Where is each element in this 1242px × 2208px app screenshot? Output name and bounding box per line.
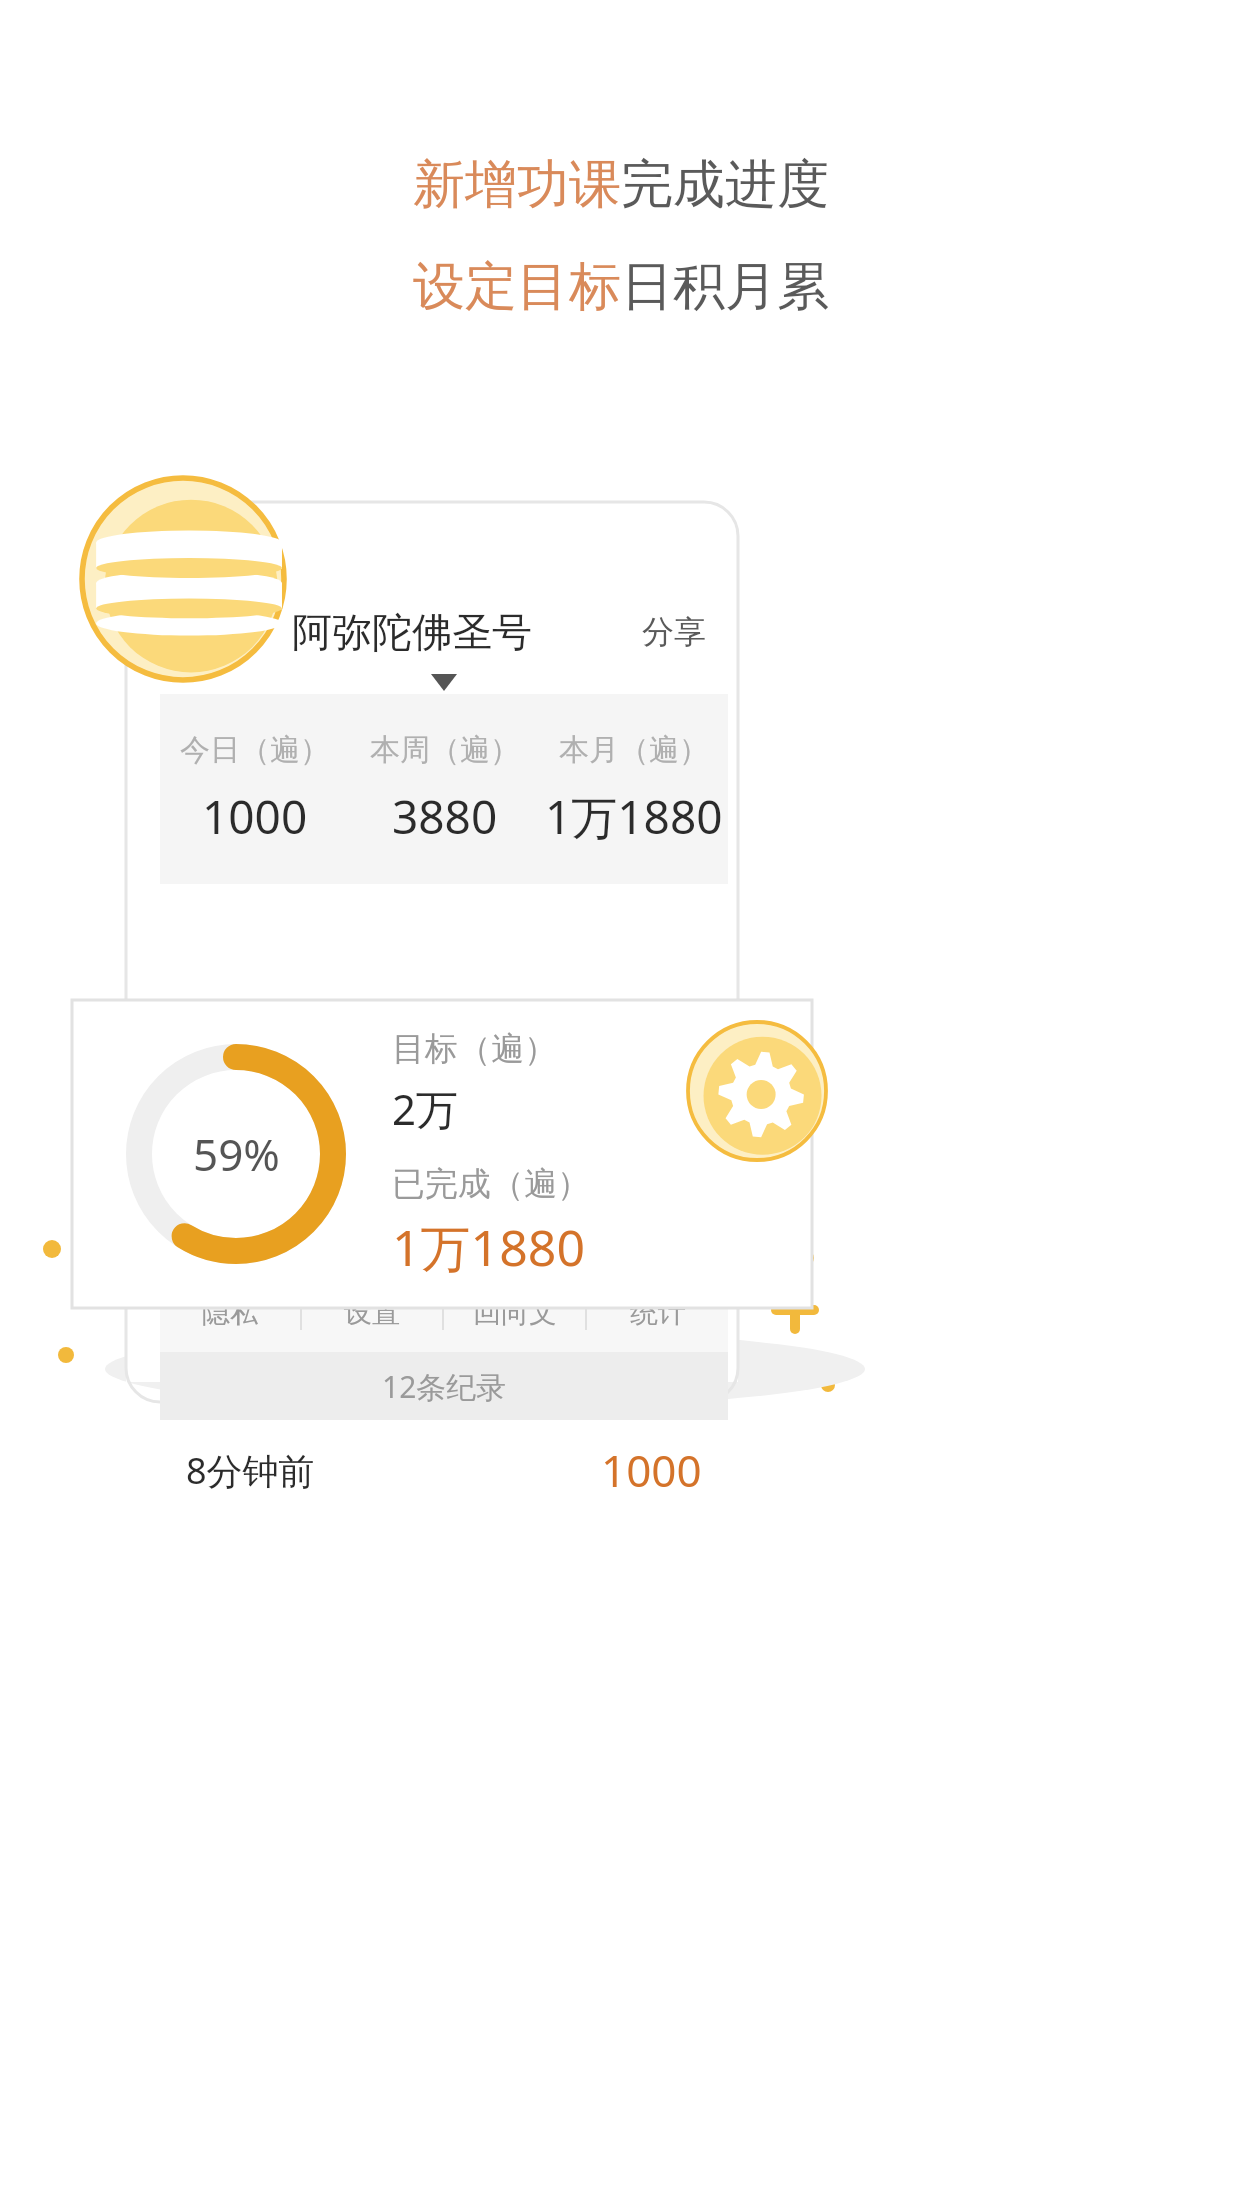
staticText: 设定目标日积月累 [413,254,829,320]
staticText: 1000 [202,785,308,848]
staticText: 59% [193,1124,280,1184]
staticText: 2万 [392,1080,459,1137]
staticText: 8分钟前 [186,1446,315,1495]
staticText: 今日（遍） [180,731,330,769]
staticText: 设置 [344,1295,400,1330]
staticText: 1000 [601,1440,702,1500]
staticText: 本周（遍） [370,731,520,769]
staticText: 1万1880 [545,785,723,848]
button[interactable]: 设置 [302,1204,442,1352]
staticText: 已完成（遍） [392,1163,590,1205]
button[interactable]: 今日（遍） [160,694,350,884]
staticText: 阿弥陀佛圣号 [292,607,532,657]
button[interactable]: 回向文 [444,1204,585,1352]
button[interactable]: Stack [82,478,284,680]
staticText: 本月（遍） [559,731,709,769]
staticText: 目标（遍） [392,1028,557,1070]
staticText: 1万1880 [392,1213,585,1281]
button[interactable]: 隐私 [160,1204,300,1352]
staticText: 3880 [392,785,498,848]
button[interactable]: Settings [688,1022,826,1160]
staticText: 回向文 [473,1295,557,1330]
button[interactable]: 本周（遍） [350,694,539,884]
staticText: 12条纪录 [382,1366,507,1407]
button[interactable]: 分享 [642,612,706,652]
staticText: 隐私 [202,1295,258,1330]
staticText: 统计 [630,1295,686,1330]
button[interactable]: 8分钟前 [186,1420,702,1520]
button[interactable]: 本月（遍） [539,694,728,884]
button[interactable]: 统计 [587,1204,728,1352]
staticText: 新增功课完成进度 [413,152,829,218]
button[interactable]: 阿弥陀佛圣号 [160,590,728,674]
